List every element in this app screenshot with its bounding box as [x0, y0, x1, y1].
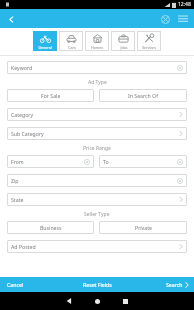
button[interactable]: Category	[7, 108, 187, 121]
staticText: General	[38, 45, 52, 50]
button[interactable]: Recent apps	[111, 292, 139, 310]
button[interactable]: Clear	[158, 12, 172, 26]
staticText: Homes	[91, 45, 103, 50]
button[interactable]: Cancel	[0, 277, 31, 292]
staticText: Reset Fields	[83, 281, 112, 288]
staticText: Services	[142, 45, 156, 50]
staticText: Ad Type	[88, 79, 107, 86]
button[interactable]: Back	[55, 292, 83, 310]
button[interactable]: Sub Category	[7, 127, 187, 140]
staticText: Jobs	[120, 45, 128, 50]
button[interactable]: Search	[161, 277, 194, 292]
staticText: Ad Posted	[11, 243, 36, 250]
button[interactable]: State	[7, 193, 187, 206]
staticText: Business	[40, 224, 62, 231]
staticText: Private	[135, 224, 152, 231]
staticText: Keyword	[11, 64, 33, 71]
staticText: Sub Category	[11, 130, 44, 137]
button[interactable]: General	[33, 31, 57, 51]
button[interactable]: Ad Posted	[7, 240, 187, 253]
staticText: Cancel	[7, 281, 24, 288]
staticText: Seller Type	[84, 211, 110, 218]
button[interactable]: In Search Of	[99, 89, 187, 102]
button[interactable]: Keyword	[7, 61, 187, 74]
button[interactable]: Services	[137, 31, 161, 51]
button[interactable]: Menu	[176, 12, 190, 26]
button[interactable]: Zip	[7, 174, 187, 187]
staticText: Category	[11, 111, 34, 118]
staticText: To	[103, 158, 109, 165]
staticText: For Sale	[41, 92, 61, 99]
button[interactable]: Business	[7, 221, 94, 234]
staticText: 12:48	[178, 1, 191, 8]
button[interactable]: For Sale	[7, 89, 94, 102]
staticText: Search	[166, 281, 183, 288]
button[interactable]: Homes	[85, 31, 109, 51]
staticText: Zip	[11, 177, 19, 184]
button[interactable]: From	[7, 155, 94, 168]
button[interactable]: Private	[99, 221, 187, 234]
staticText: From	[11, 158, 24, 165]
staticText: Cars	[68, 45, 76, 50]
staticText: Price Range	[83, 145, 111, 152]
button[interactable]: Home	[83, 292, 111, 310]
button[interactable]: Reset Fields	[76, 277, 119, 292]
button[interactable]: Jobs	[111, 31, 135, 51]
button[interactable]: To	[99, 155, 187, 168]
button[interactable]: Cars	[59, 31, 83, 51]
button[interactable]: Back	[3, 11, 19, 27]
staticText: In Search Of	[128, 92, 158, 99]
staticText: State	[11, 196, 24, 203]
